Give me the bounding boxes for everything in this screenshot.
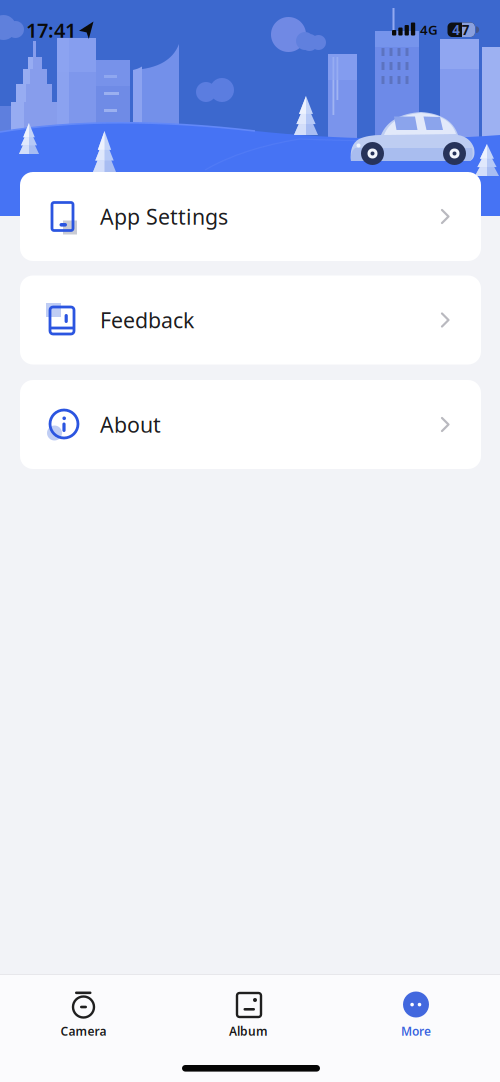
staticText: 4 [452,21,460,39]
staticText: About [100,410,161,439]
button[interactable]: Camera [38,984,128,1040]
staticText: Album [229,1023,268,1039]
staticText: Feedback [100,306,194,334]
button[interactable]: Album [203,984,293,1040]
staticText: Camera [60,1023,106,1039]
staticText: More [401,1023,431,1039]
button[interactable]: App Settings [20,172,481,261]
staticText: App Settings [100,202,228,231]
button[interactable]: About [20,380,481,469]
button[interactable]: More [371,984,461,1040]
staticText: 17:41 [26,17,76,43]
staticText: 7 [462,21,470,39]
staticText: 4G [420,21,438,38]
button[interactable]: Feedback [20,275,481,364]
